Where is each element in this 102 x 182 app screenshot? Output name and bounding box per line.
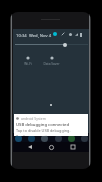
button[interactable]: App <box>14 134 22 142</box>
staticText: android System <box>21 116 46 121</box>
button[interactable]: Data Saver <box>40 56 63 66</box>
button[interactable]: App <box>54 134 62 142</box>
staticText: USB debugging connected <box>16 122 70 128</box>
button[interactable]: App <box>40 134 48 142</box>
staticText: Tap to disable USB debugging. <box>16 128 71 133</box>
button[interactable]: Back <box>24 142 35 152</box>
button[interactable]: Home <box>46 142 57 152</box>
button[interactable]: Edit tiles <box>61 32 65 36</box>
staticText: Tap for more options. <box>16 134 55 136</box>
button[interactable]: User account <box>53 32 57 36</box>
button[interactable]: App <box>27 134 35 142</box>
button[interactable]: Recents <box>67 142 78 152</box>
button[interactable]: App <box>67 134 75 142</box>
button[interactable]: android System <box>14 114 88 136</box>
staticText: Data Saver <box>43 62 60 66</box>
staticText: Wi-Fi <box>24 62 32 66</box>
staticText: 10:34 Wed, Nov 4 <box>16 33 52 39</box>
button[interactable]: App <box>80 134 88 142</box>
button[interactable]: Wi-Fi <box>16 56 40 66</box>
button[interactable]: Brightness <box>63 43 67 47</box>
